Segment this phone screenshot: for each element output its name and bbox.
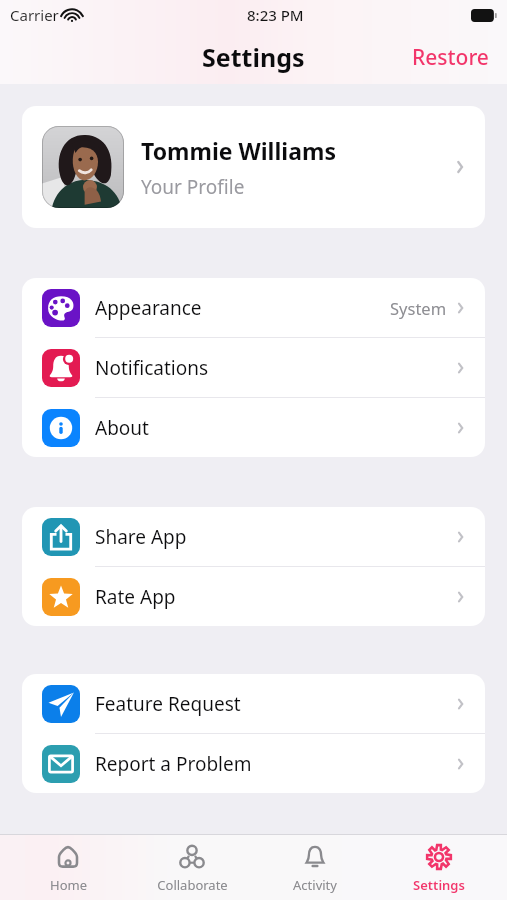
button[interactable]: Appearance (22, 278, 485, 337)
staticText: 8:23 PM (247, 5, 304, 25)
button[interactable]: Activity (260, 835, 370, 900)
staticText: Collaborate (157, 876, 228, 894)
staticText: Settings (202, 40, 305, 74)
staticText: Carrier (10, 5, 59, 25)
staticText: Notifications (95, 355, 209, 381)
button[interactable]: Settings (384, 835, 494, 900)
button[interactable]: Tommie Williams (22, 106, 485, 228)
staticText: Settings (413, 876, 465, 894)
button[interactable]: Notifications (22, 338, 485, 397)
staticText: Appearance (95, 295, 202, 321)
button[interactable]: Share App (22, 507, 485, 566)
button[interactable]: Home (13, 835, 123, 900)
staticText: Your Profile (141, 174, 245, 200)
staticText: Tommie Williams (141, 135, 336, 166)
staticText: Home (50, 876, 87, 894)
button[interactable]: Feature Request (22, 674, 485, 733)
staticText: Feature Request (95, 691, 241, 717)
button[interactable]: Restore (394, 35, 507, 80)
staticText: About (95, 415, 149, 441)
button[interactable]: About (22, 398, 485, 457)
staticText: Activity (293, 876, 337, 894)
button[interactable]: Report a Problem (22, 734, 485, 793)
staticText: Rate App (95, 584, 176, 610)
staticText: Report a Problem (95, 751, 252, 777)
button[interactable]: Rate App (22, 567, 485, 626)
staticText: Share App (95, 524, 187, 550)
staticText: System (390, 297, 447, 319)
staticText: Restore (412, 43, 489, 72)
button[interactable]: Collaborate (137, 835, 247, 900)
